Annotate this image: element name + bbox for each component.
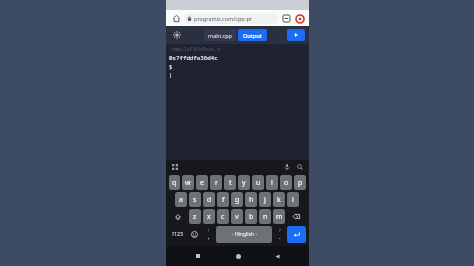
staticText: w bbox=[185, 178, 191, 188]
button[interactable]: ? bbox=[274, 226, 285, 243]
staticText: p bbox=[298, 178, 303, 188]
button[interactable]: g bbox=[231, 192, 243, 207]
staticText: l bbox=[292, 195, 294, 205]
staticText: | bbox=[169, 71, 173, 79]
button[interactable]: h bbox=[245, 192, 257, 207]
staticText: d bbox=[207, 195, 212, 205]
staticText: s bbox=[193, 195, 197, 205]
staticText: g bbox=[235, 195, 240, 205]
staticText: k bbox=[277, 195, 281, 205]
staticText: . bbox=[279, 233, 281, 241]
button[interactable]: Home bbox=[230, 248, 246, 264]
button[interactable]: l bbox=[287, 192, 299, 207]
staticText: programiz.com/cpp-pr bbox=[194, 15, 253, 22]
button[interactable]: e bbox=[196, 175, 208, 190]
staticText: $ bbox=[169, 63, 173, 71]
staticText: f bbox=[222, 195, 225, 205]
staticText: c bbox=[221, 212, 225, 222]
staticText: ?123 bbox=[172, 231, 183, 238]
button[interactable]: Menu bbox=[294, 13, 305, 24]
button[interactable]: programiz.com/cpp-pr bbox=[184, 13, 278, 24]
button[interactable]: Shift bbox=[169, 209, 187, 224]
staticText: a bbox=[179, 195, 183, 205]
staticText: h bbox=[249, 195, 254, 205]
button[interactable]: o bbox=[280, 175, 292, 190]
staticText: u bbox=[256, 178, 261, 188]
button[interactable]: Enter bbox=[287, 226, 306, 243]
button[interactable]: Back bbox=[269, 248, 285, 264]
button[interactable]: i bbox=[266, 175, 278, 190]
button[interactable]: Tabs bbox=[281, 13, 292, 24]
button[interactable]: x bbox=[203, 209, 215, 224]
staticText: o bbox=[284, 178, 289, 188]
button[interactable]: main.cpp bbox=[204, 29, 236, 41]
button[interactable]: m bbox=[273, 209, 285, 224]
staticText: z bbox=[193, 212, 197, 222]
button[interactable]: u bbox=[252, 175, 264, 190]
button[interactable]: Keyboard options bbox=[170, 162, 180, 172]
button[interactable]: d bbox=[203, 192, 215, 207]
button[interactable]: Recents bbox=[190, 248, 206, 264]
button[interactable]: ! bbox=[203, 226, 214, 243]
staticText: i bbox=[271, 178, 273, 188]
staticText: , bbox=[208, 233, 210, 241]
staticText: main.cpp bbox=[208, 32, 232, 39]
button[interactable]: Output bbox=[238, 29, 267, 41]
button[interactable]: Search bbox=[295, 162, 305, 172]
button[interactable]: b bbox=[245, 209, 257, 224]
staticText: n bbox=[263, 212, 268, 222]
button[interactable]: t bbox=[224, 175, 236, 190]
button[interactable]: Theme bbox=[170, 28, 184, 42]
button[interactable]: Emoji bbox=[188, 226, 201, 243]
staticText: y bbox=[242, 178, 246, 188]
button[interactable]: Home bbox=[170, 12, 182, 24]
staticText: j bbox=[264, 195, 266, 205]
button[interactable]: n bbox=[259, 209, 271, 224]
staticText: x bbox=[207, 212, 211, 222]
button[interactable]: w bbox=[182, 175, 194, 190]
staticText: t bbox=[229, 178, 232, 188]
button[interactable]: r bbox=[210, 175, 222, 190]
button[interactable]: s bbox=[189, 192, 201, 207]
button[interactable]: c bbox=[217, 209, 229, 224]
staticText: r bbox=[215, 178, 218, 188]
button[interactable]: j bbox=[259, 192, 271, 207]
button[interactable]: · Hinglish · bbox=[216, 226, 272, 243]
button[interactable]: Backspace bbox=[287, 209, 306, 224]
button[interactable]: Voice input bbox=[282, 162, 292, 172]
button[interactable]: f bbox=[217, 192, 229, 207]
button[interactable]: a bbox=[175, 192, 187, 207]
staticText: b bbox=[249, 212, 254, 222]
staticText: ? bbox=[279, 228, 281, 233]
button[interactable]: ?123 bbox=[169, 226, 186, 243]
button[interactable]: q bbox=[169, 175, 180, 190]
staticText: q bbox=[172, 178, 177, 188]
staticText: Output bbox=[243, 32, 262, 39]
staticText: m bbox=[276, 212, 283, 222]
button[interactable]: Run bbox=[287, 29, 305, 41]
button[interactable]: z bbox=[189, 209, 201, 224]
staticText: v bbox=[235, 212, 239, 222]
staticText: · Hinglish · bbox=[232, 231, 257, 238]
button[interactable]: v bbox=[231, 209, 243, 224]
staticText: 0x7ffddfa36d4c bbox=[169, 54, 218, 62]
staticText: e bbox=[200, 178, 204, 188]
staticText: /tmp/IrFXPcPout.o bbox=[169, 46, 221, 53]
button[interactable]: k bbox=[273, 192, 285, 207]
staticText: ! bbox=[208, 228, 210, 233]
button[interactable]: p bbox=[294, 175, 306, 190]
button[interactable]: y bbox=[238, 175, 250, 190]
